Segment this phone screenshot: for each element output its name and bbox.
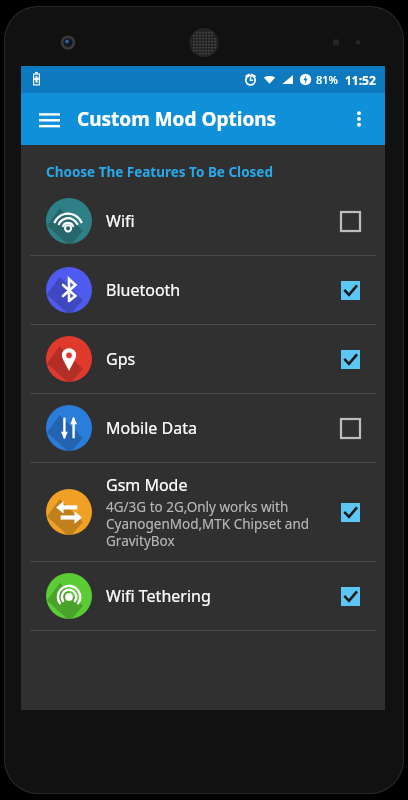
button[interactable]: Checked: [333, 273, 367, 307]
staticText: 4G/3G to 2G,Only works with CyanogenMod,…: [106, 498, 323, 550]
button[interactable]: Bluetooth: [21, 256, 385, 324]
button[interactable]: Unchecked: [333, 204, 367, 238]
staticText: 11:52: [345, 72, 376, 88]
button[interactable]: Checked: [333, 579, 367, 613]
button[interactable]: Wifi: [21, 187, 385, 255]
staticText: Gsm Mode: [106, 474, 188, 496]
button[interactable]: Open navigation menu: [29, 99, 69, 139]
button[interactable]: Gsm Mode: [21, 463, 385, 561]
staticText: Gps: [106, 348, 136, 370]
button[interactable]: Wifi Tethering: [21, 562, 385, 630]
button[interactable]: Unchecked: [333, 411, 367, 445]
staticText: 81%: [316, 72, 338, 87]
staticText: Wifi Tethering: [106, 585, 211, 607]
staticText: Custom Mod Options: [77, 106, 277, 132]
button[interactable]: Gps: [21, 325, 385, 393]
button[interactable]: Checked: [333, 495, 367, 529]
staticText: Choose The Features To Be Closed: [46, 163, 273, 181]
staticText: Wifi: [106, 210, 135, 232]
staticText: Mobile Data: [106, 417, 197, 439]
button[interactable]: Mobile Data: [21, 394, 385, 462]
staticText: Bluetooth: [106, 279, 181, 301]
button[interactable]: More options: [339, 99, 379, 139]
button[interactable]: Checked: [333, 342, 367, 376]
